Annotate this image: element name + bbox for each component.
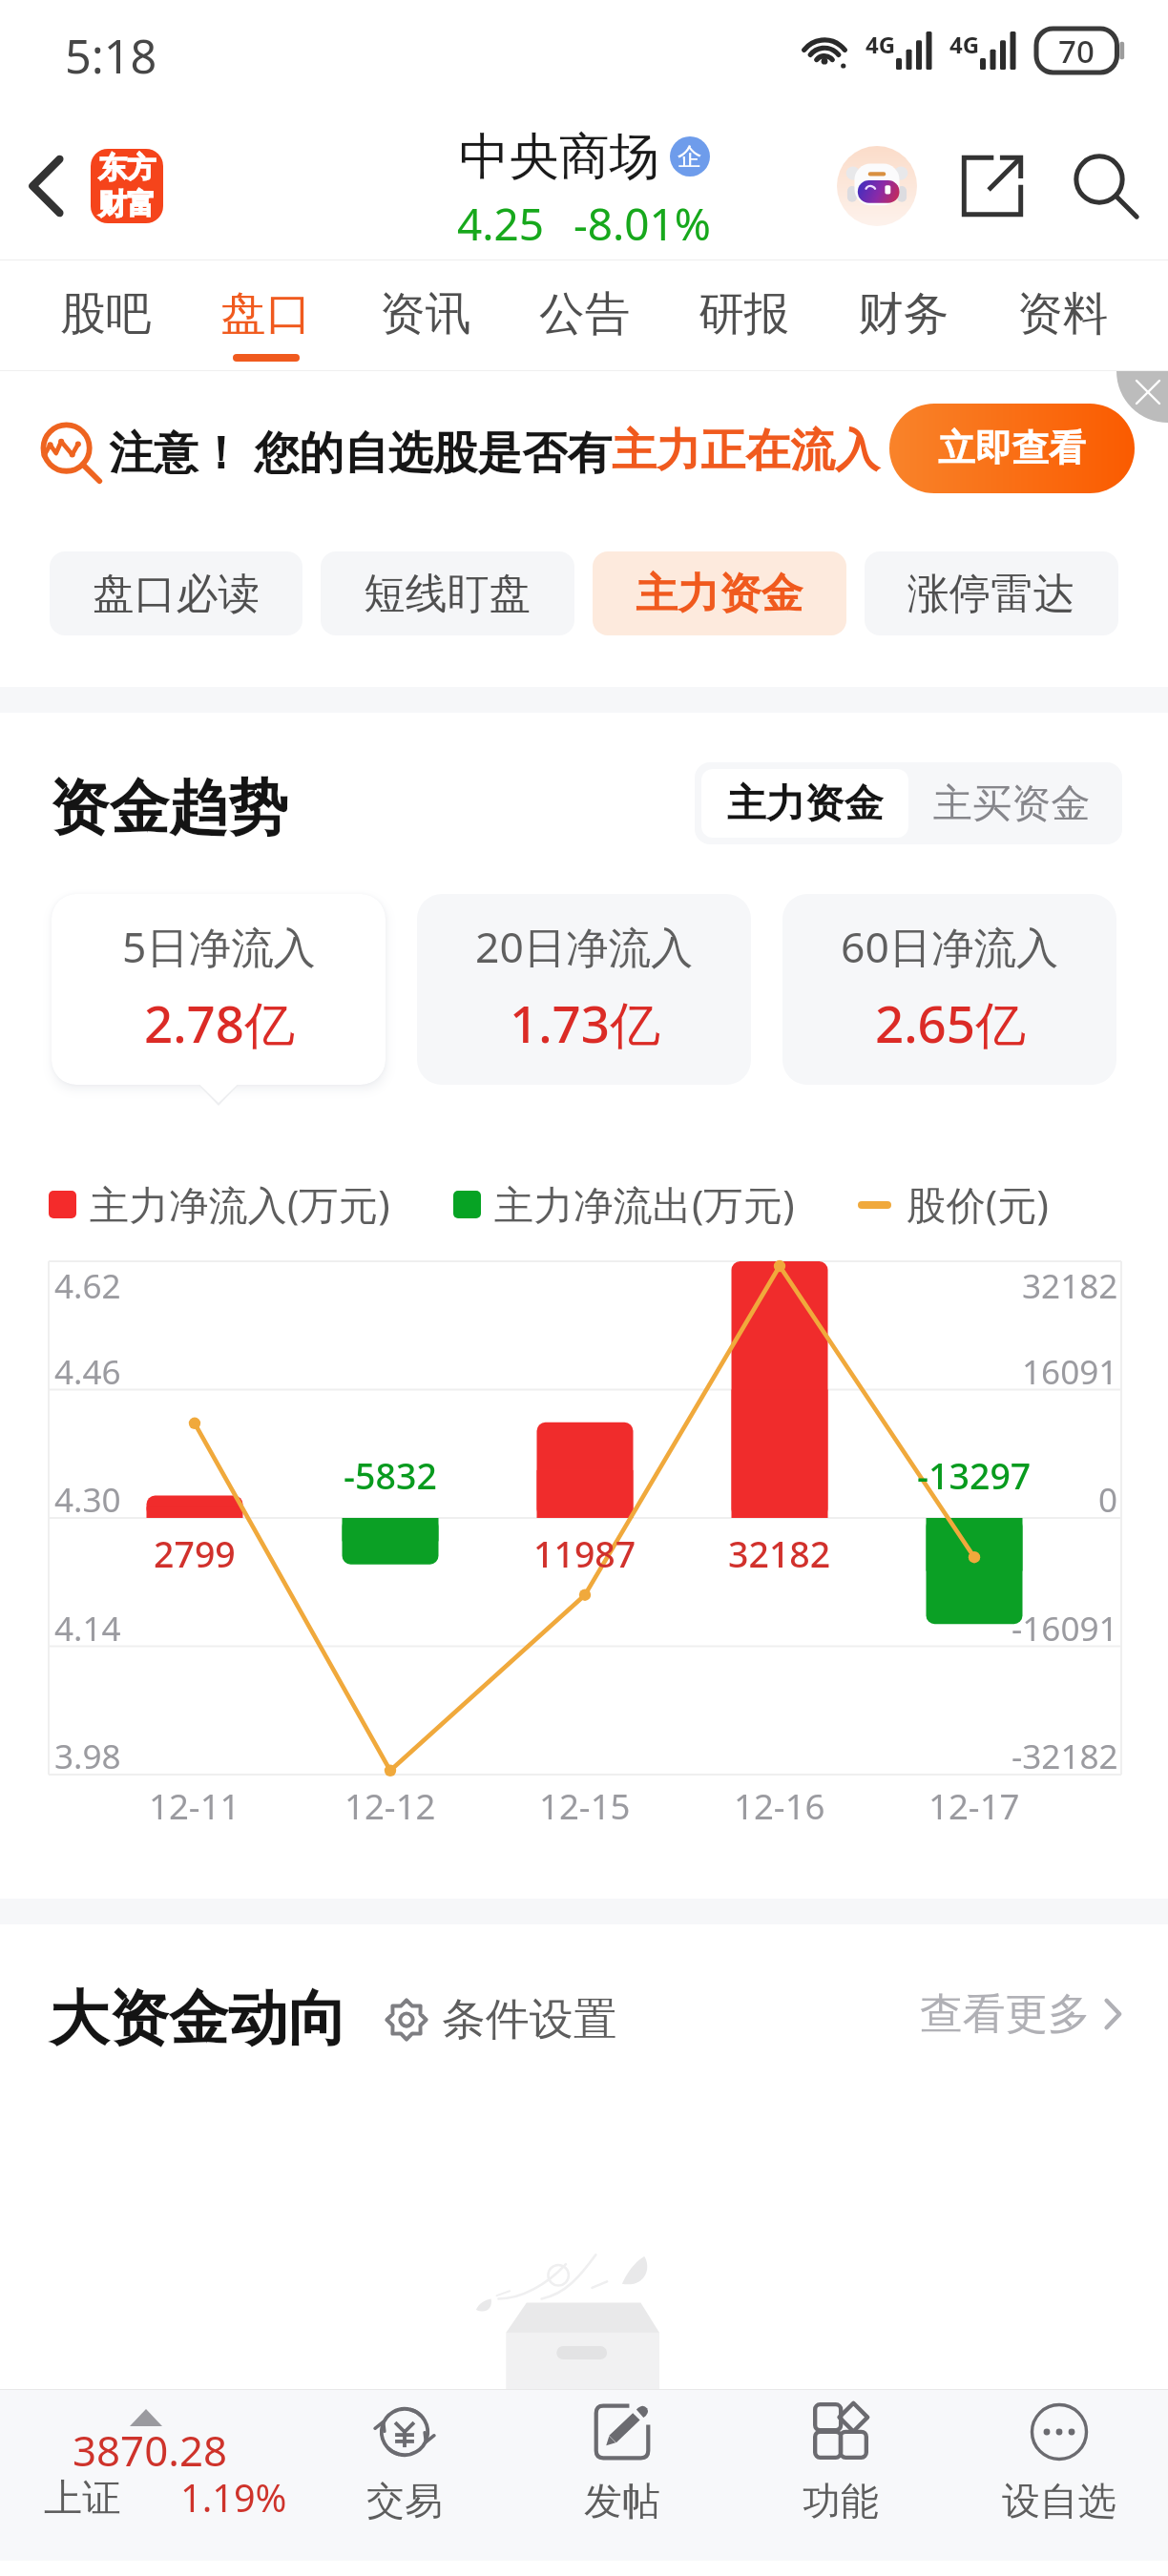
staticText: 4.14: [54, 1605, 121, 1651]
staticText: 盘口必读: [93, 568, 261, 620]
staticText: 4.46: [54, 1348, 121, 1394]
staticText: 立即查看: [938, 426, 1086, 472]
staticText: -5832: [344, 1451, 437, 1500]
staticText: 东方: [98, 150, 156, 186]
staticText: 60日净流入: [841, 918, 1059, 976]
staticText: 主力正在流入: [612, 423, 880, 479]
staticText: 查看更多: [920, 1987, 1091, 2041]
button[interactable]: 查看更多: [920, 1987, 1122, 2041]
staticText: 3.98: [54, 1733, 121, 1778]
staticText: 功能: [803, 2478, 879, 2525]
staticText: 主买资金: [933, 779, 1091, 828]
staticText: 公告: [539, 285, 631, 343]
button[interactable]: 5日净流入: [52, 894, 386, 1085]
staticText: 12-17: [928, 1782, 1020, 1830]
staticText: 4G: [949, 29, 980, 60]
staticText: 1.19%: [180, 2472, 287, 2524]
staticText: 2799: [154, 1529, 236, 1578]
button[interactable]: 设自选: [949, 2390, 1168, 2561]
button[interactable]: 股吧: [26, 260, 186, 371]
staticText: 70: [1058, 30, 1095, 73]
staticText: 资料: [1017, 285, 1109, 343]
button[interactable]: Search: [1049, 106, 1163, 266]
staticText: 涨停雷达: [907, 568, 1075, 620]
button[interactable]: 主买资金: [908, 769, 1116, 838]
staticText: 盘口: [220, 285, 312, 343]
staticText: 32182: [728, 1529, 831, 1578]
staticText: 发帖: [584, 2478, 660, 2525]
staticText: 财富: [98, 186, 156, 222]
staticText: 研报: [699, 285, 790, 343]
staticText: 条件设置: [442, 1992, 617, 2047]
button[interactable]: 60日净流入: [782, 894, 1116, 1085]
staticText: 企: [678, 141, 702, 172]
staticText: 资金趋势: [50, 771, 288, 846]
staticText: 12-11: [149, 1782, 240, 1830]
staticText: 短线盯盘: [364, 568, 532, 620]
button[interactable]: 功能: [731, 2390, 949, 2561]
button[interactable]: AI assistant: [818, 106, 936, 266]
button[interactable]: 交易: [296, 2390, 513, 2561]
staticText: 12-16: [734, 1782, 825, 1830]
staticText: 注意！ 您的自选股是否有: [109, 421, 612, 482]
staticText: 5日净流入: [122, 918, 316, 976]
button[interactable]: 短线盯盘: [321, 551, 574, 635]
button[interactable]: 3870.28: [0, 2390, 305, 2561]
staticText: -32182: [1012, 1733, 1118, 1778]
button[interactable]: Share: [936, 106, 1049, 266]
button[interactable]: 20日净流入: [417, 894, 751, 1085]
staticText: 主力净流入(万元): [90, 1177, 390, 1232]
staticText: -8.01%: [574, 194, 711, 254]
button[interactable]: 公告: [505, 260, 664, 371]
staticText: 32182: [1022, 1262, 1118, 1308]
staticText: 5:18: [65, 24, 157, 87]
button[interactable]: 资讯: [345, 260, 505, 371]
staticText: 12-12: [344, 1782, 436, 1830]
button[interactable]: 条件设置: [385, 1992, 617, 2047]
staticText: 大资金动向: [50, 1982, 347, 2057]
staticText: 3870.28: [73, 2421, 228, 2479]
staticText: 4.62: [54, 1262, 121, 1308]
staticText: 上证: [44, 2474, 121, 2523]
button[interactable]: 研报: [664, 260, 824, 371]
staticText: 主力资金: [636, 568, 803, 620]
button[interactable]: Back: [0, 106, 91, 266]
button[interactable]: 财务: [824, 260, 983, 371]
staticText: 交易: [366, 2478, 443, 2525]
button[interactable]: Close banner: [1116, 371, 1168, 423]
button[interactable]: 发帖: [513, 2390, 731, 2561]
staticText: 4G: [866, 29, 896, 60]
staticText: 设自选: [1002, 2478, 1116, 2525]
staticText: -13297: [917, 1451, 1032, 1500]
button[interactable]: 盘口必读: [50, 551, 302, 635]
button[interactable]: East Money home: [91, 106, 163, 266]
staticText: 2.78亿: [144, 989, 295, 1058]
staticText: 20日净流入: [475, 918, 694, 976]
staticText: 主力净流出(万元): [494, 1177, 795, 1232]
staticText: 12-15: [539, 1782, 631, 1830]
staticText: 股吧: [60, 285, 152, 343]
staticText: 16091: [1022, 1348, 1118, 1394]
staticText: 财务: [858, 285, 949, 343]
staticText: -16091: [1012, 1605, 1118, 1651]
staticText: 11987: [533, 1529, 636, 1578]
button[interactable]: 主力资金: [701, 769, 908, 838]
staticText: 中央商场: [459, 125, 659, 188]
button[interactable]: 资料: [983, 260, 1142, 371]
button[interactable]: 主力资金: [593, 551, 846, 635]
staticText: 4.30: [54, 1476, 121, 1522]
button[interactable]: 盘口: [186, 260, 345, 371]
button[interactable]: 立即查看: [889, 404, 1135, 493]
staticText: 主力资金: [727, 779, 884, 828]
staticText: 资讯: [380, 285, 471, 343]
staticText: 4.25: [457, 194, 545, 254]
staticText: 1.73亿: [510, 989, 660, 1058]
staticText: 股价(元): [907, 1177, 1050, 1232]
button[interactable]: 涨停雷达: [865, 551, 1118, 635]
staticText: 2.65亿: [875, 989, 1026, 1058]
staticText: 0: [1098, 1476, 1118, 1522]
